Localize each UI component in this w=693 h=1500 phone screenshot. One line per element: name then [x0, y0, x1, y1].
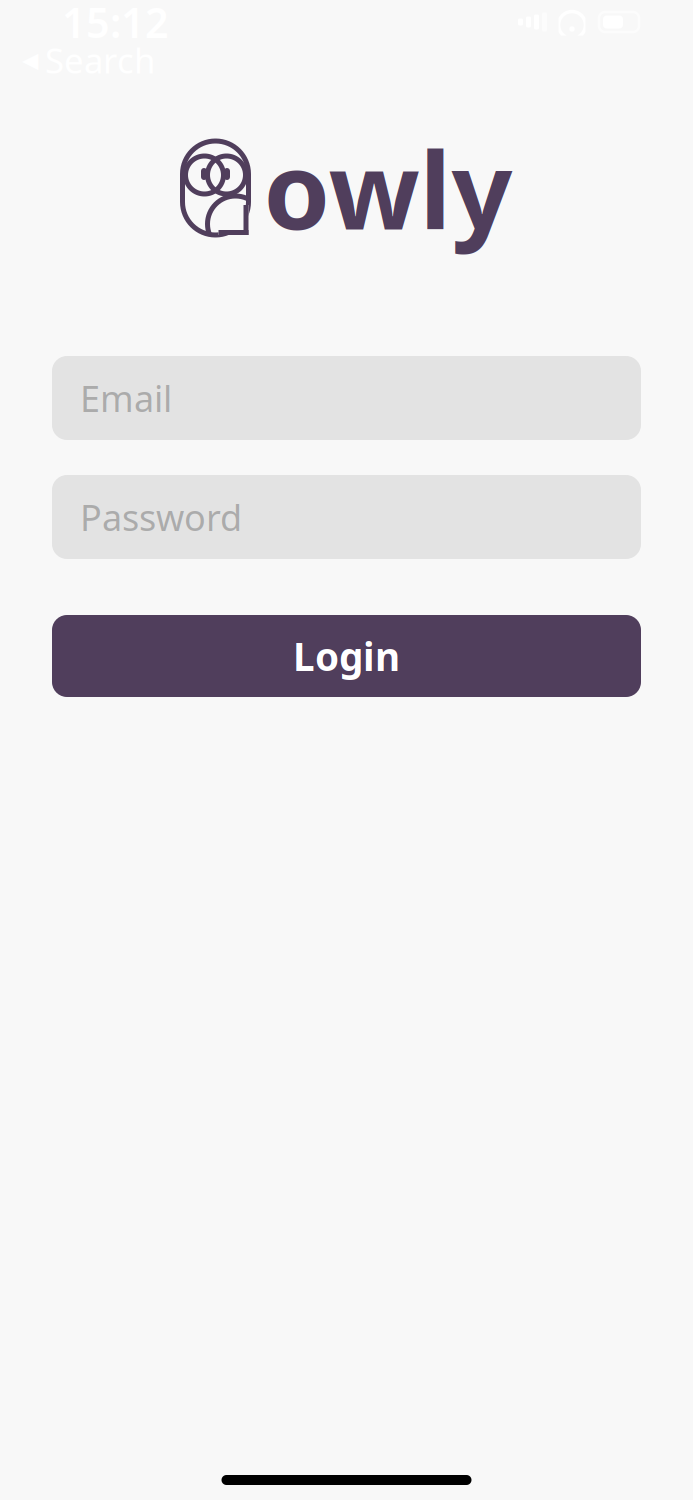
button[interactable]: Login: [52, 615, 641, 697]
button[interactable]: Email: [52, 356, 641, 440]
staticText: ◀: [22, 48, 38, 72]
staticText: Email: [80, 374, 172, 422]
staticText: owly: [263, 117, 512, 259]
button[interactable]: Password: [52, 475, 641, 559]
staticText: Password: [80, 493, 242, 541]
staticText: Login: [293, 630, 400, 682]
